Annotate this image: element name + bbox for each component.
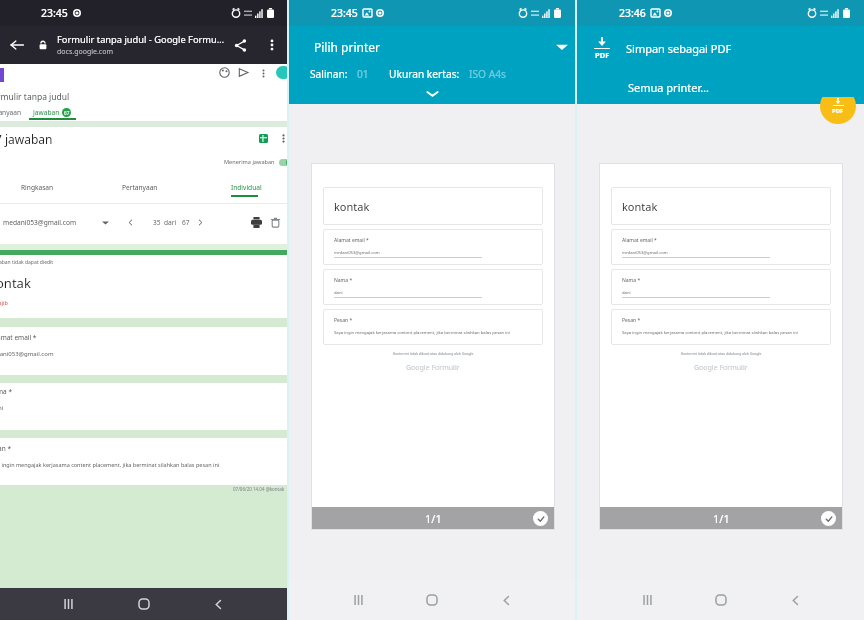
button[interactable]: Home <box>395 580 469 620</box>
staticText: medani053@gmail.com <box>3 218 77 227</box>
staticText: Pesan * <box>622 317 641 324</box>
button[interactable]: Semua printer… <box>577 70 864 104</box>
button[interactable]: Next response <box>194 216 207 229</box>
staticText: Google Formulir <box>694 363 748 373</box>
button[interactable]: PDF <box>577 26 864 70</box>
button[interactable]: Delete <box>267 214 283 230</box>
staticText: kontak <box>334 199 370 214</box>
staticText: PDF <box>595 50 610 60</box>
button[interactable]: Pertanyaan <box>74 181 206 193</box>
button[interactable]: Print <box>248 214 264 230</box>
button[interactable]: More options <box>256 26 287 64</box>
staticText: amat email * <box>0 333 37 342</box>
staticText: ma * <box>0 387 12 396</box>
staticText: Nama * <box>334 277 353 284</box>
staticText: Saya ingin mengajak kerjasama content pl… <box>622 330 798 336</box>
staticText: PDF <box>832 107 844 115</box>
staticText: Ringkasan <box>21 183 54 192</box>
staticText: Semua printer… <box>628 80 709 95</box>
staticText: Nama * <box>622 277 641 284</box>
staticText: 1/1 <box>713 511 730 526</box>
button[interactable]: Select respondent <box>101 218 110 227</box>
button[interactable]: Confirm print <box>533 511 548 526</box>
staticText: waban tidak dapat diedit <box>0 259 54 266</box>
button[interactable]: Recent apps <box>31 588 106 620</box>
button[interactable]: Theme <box>218 66 231 79</box>
staticText: kontak <box>622 199 658 214</box>
staticText: Menerima jawaban <box>224 158 275 166</box>
button[interactable]: Share <box>224 26 256 64</box>
button[interactable]: More <box>257 67 269 79</box>
staticText: dani053@gmail.com <box>0 350 54 358</box>
staticText: Ukuran kertas: <box>389 67 460 81</box>
staticText: mrdani053@gmail.com <box>334 250 380 256</box>
staticText: ontak <box>0 274 31 292</box>
staticText: san * <box>0 444 12 453</box>
staticText: Konten ini tidak dibuat atau didukung ol… <box>393 351 474 356</box>
staticText: docs.google.com <box>57 47 113 57</box>
staticText: dani <box>622 290 631 296</box>
staticText: 1/1 <box>425 511 442 526</box>
button[interactable]: Recent apps <box>321 580 395 620</box>
button[interactable]: Open in Sheets <box>259 134 268 143</box>
button[interactable]: Back <box>0 28 34 62</box>
button[interactable]: Back <box>469 580 543 620</box>
staticText: Jawaban <box>33 108 60 117</box>
button[interactable]: Back <box>758 580 832 620</box>
staticText: Pesan * <box>334 317 353 324</box>
staticText: Formulir tanpa judul - Google Formu… <box>57 33 224 46</box>
staticText: Simpan sebagai PDF <box>626 41 732 56</box>
staticText: 23:46 <box>619 6 646 20</box>
staticText: a ingin mengajak kerjasama content place… <box>0 461 220 468</box>
button[interactable]: Back <box>181 588 256 620</box>
button[interactable]: Previous response <box>124 216 137 229</box>
staticText: Pertanyaan <box>122 183 158 192</box>
staticText: Saya ingin mengajak kerjasama content pl… <box>334 330 510 336</box>
staticText: Salinan: <box>310 67 348 81</box>
staticText: Alamat email * <box>334 237 369 244</box>
staticText: Pilih printer <box>314 39 380 55</box>
staticText: 7 jawaban <box>0 131 53 147</box>
staticText: 01 <box>357 67 369 81</box>
staticText: rmulir tanpa judul <box>0 91 70 103</box>
staticText: 23:45 <box>41 6 68 20</box>
staticText: 35 <box>153 218 161 227</box>
staticText: Alamat email * <box>622 237 657 244</box>
staticText: 67 <box>182 218 190 227</box>
button[interactable]: Pilih printer <box>289 26 575 67</box>
button[interactable]: Expand options <box>289 82 575 104</box>
staticText: Tajib <box>0 299 8 306</box>
staticText: mrdani053@gmail.com <box>622 250 668 256</box>
button[interactable]: Recent apps <box>610 580 684 620</box>
button[interactable]: Send <box>237 66 250 79</box>
staticText: ISO A4s <box>469 67 506 81</box>
button[interactable]: Confirm print <box>821 511 836 526</box>
button[interactable]: Account <box>276 66 291 79</box>
staticText: ni <box>0 404 4 412</box>
staticText: 67 <box>64 110 70 116</box>
button[interactable]: Accepting responses <box>279 159 295 166</box>
button[interactable]: Site information <box>34 36 52 54</box>
staticText: 07/06/20 14.04 @kontak <box>233 486 285 492</box>
staticText: dani <box>334 290 343 296</box>
staticText: Google Formulir <box>406 363 460 373</box>
button[interactable]: Ringkasan <box>0 181 74 193</box>
button[interactable]: Home <box>684 580 758 620</box>
staticText: 23:45 <box>331 6 358 20</box>
button[interactable]: Home <box>106 588 181 620</box>
button[interactable]: Individual <box>206 181 287 193</box>
button[interactable]: More options <box>277 132 289 144</box>
staticText: Konten ini tidak dibuat atau didukung ol… <box>681 351 762 356</box>
staticText: Individual <box>231 183 262 192</box>
button[interactable]: Save as PDF <box>820 97 856 124</box>
staticText: tanyaan <box>0 108 21 117</box>
staticText: dari <box>164 218 177 227</box>
